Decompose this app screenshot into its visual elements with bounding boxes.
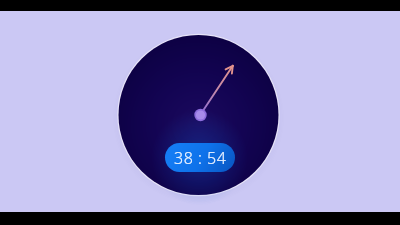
button[interactable]: 38 : 54 <box>165 143 235 172</box>
staticText: 38 : 54 <box>174 147 227 169</box>
